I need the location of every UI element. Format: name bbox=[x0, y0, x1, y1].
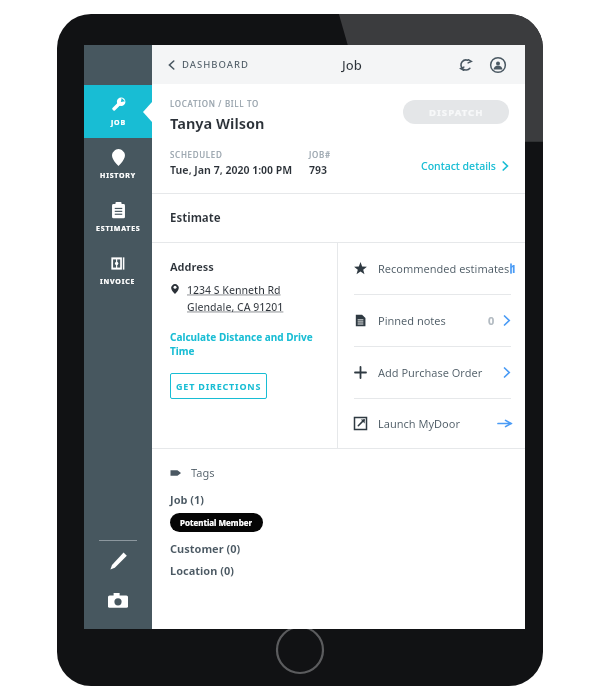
staticText: Address bbox=[170, 259, 214, 274]
button[interactable]: DISPATCH bbox=[403, 100, 509, 124]
staticText: Estimate bbox=[170, 210, 221, 226]
button[interactable]: Potential Member bbox=[170, 513, 263, 532]
button[interactable]: Account bbox=[485, 52, 511, 78]
staticText: Location (0) bbox=[170, 563, 234, 578]
staticText: Contact details bbox=[421, 159, 496, 173]
staticText: Potential Member bbox=[180, 517, 253, 528]
button[interactable]: GET DIRECTIONS bbox=[170, 373, 267, 399]
staticText: LOCATION / BILL TO bbox=[170, 98, 260, 109]
staticText: GET DIRECTIONS bbox=[176, 380, 262, 392]
button[interactable]: Contact details bbox=[421, 155, 509, 177]
staticText: DISPATCH bbox=[429, 106, 484, 119]
button[interactable]: Recommended estimates bbox=[354, 243, 511, 294]
staticText: Job bbox=[342, 56, 362, 74]
staticText: HISTORY bbox=[100, 171, 136, 181]
button[interactable]: ESTIMATES bbox=[84, 191, 152, 244]
staticText: Pinned notes bbox=[378, 313, 446, 328]
staticText: Tags bbox=[191, 465, 215, 480]
button[interactable]: INVOICE bbox=[84, 244, 152, 297]
staticText: Customer (0) bbox=[170, 541, 241, 556]
staticText: DASHBOARD bbox=[182, 58, 249, 71]
staticText: INVOICE bbox=[100, 277, 136, 287]
button[interactable]: DASHBOARD bbox=[166, 52, 251, 77]
staticText: SCHEDULED bbox=[170, 149, 223, 160]
staticText: JOB bbox=[111, 118, 126, 128]
button[interactable]: Sync bbox=[453, 52, 479, 78]
staticText: 1234 S Kenneth Rd bbox=[187, 283, 281, 297]
button[interactable]: Camera bbox=[84, 581, 152, 621]
staticText: Tue, Jan 7, 2020 1:00 PM bbox=[170, 163, 293, 177]
staticText: Job (1) bbox=[170, 492, 205, 507]
staticText: Calculate Distance and Drive Time bbox=[170, 330, 337, 358]
button[interactable]: Pinned notes bbox=[354, 295, 511, 346]
staticText: Recommended estimates bbox=[378, 261, 510, 276]
button[interactable]: 1234 S Kenneth Rd bbox=[187, 283, 284, 314]
staticText: Tanya Wilson bbox=[170, 113, 265, 133]
button[interactable]: HISTORY bbox=[84, 138, 152, 191]
staticText: Glendale, CA 91201 bbox=[187, 300, 284, 314]
button[interactable]: Edit bbox=[84, 541, 152, 581]
button[interactable]: JOB bbox=[84, 85, 152, 138]
staticText: Launch MyDoor bbox=[378, 416, 460, 431]
button[interactable]: Launch MyDoor bbox=[354, 399, 511, 448]
staticText: 793 bbox=[309, 163, 328, 177]
button[interactable]: Calculate Distance and Drive Time bbox=[170, 330, 337, 358]
staticText: 1 bbox=[510, 261, 511, 276]
staticText: 0 bbox=[488, 313, 495, 328]
staticText: Add Purchase Order bbox=[378, 365, 483, 380]
staticText: ESTIMATES bbox=[96, 224, 141, 234]
button[interactable]: Add Purchase Order bbox=[354, 347, 511, 398]
staticText: JOB# bbox=[309, 149, 331, 160]
